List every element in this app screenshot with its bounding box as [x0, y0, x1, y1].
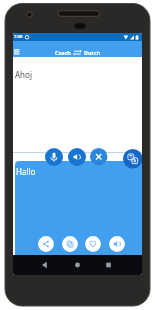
staticText: Hallo: [16, 166, 36, 177]
button[interactable]: [45, 148, 63, 166]
button[interactable]: [90, 148, 107, 165]
button[interactable]: [85, 236, 101, 252]
button[interactable]: [101, 258, 116, 272]
button[interactable]: [37, 258, 52, 272]
button[interactable]: [123, 149, 142, 169]
staticText: Czech: [55, 49, 71, 56]
staticText: Dutch: [84, 49, 101, 56]
button[interactable]: Czech: [55, 49, 101, 56]
button[interactable]: [68, 148, 86, 166]
button[interactable]: [13, 46, 23, 57]
button[interactable]: [38, 236, 54, 252]
staticText: Ahoj: [15, 69, 32, 80]
button[interactable]: [70, 258, 85, 272]
staticText: 7:38: [14, 34, 23, 40]
button[interactable]: [62, 236, 78, 252]
button[interactable]: [109, 236, 125, 252]
